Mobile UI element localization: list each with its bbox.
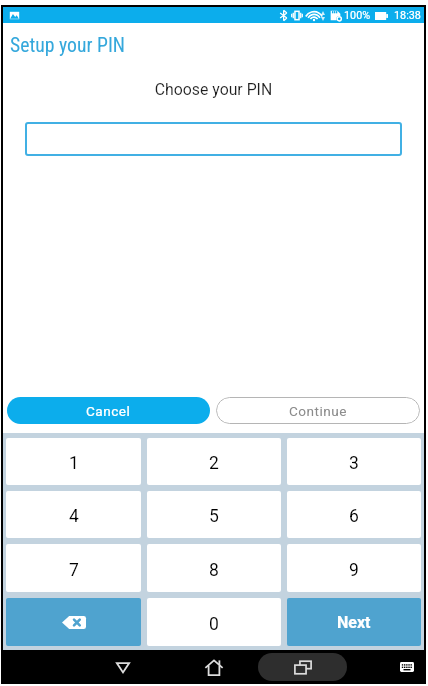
- staticText: 9: [349, 560, 359, 581]
- button[interactable]: 2: [147, 438, 281, 485]
- button[interactable]: 4: [6, 491, 141, 538]
- staticText: 5: [209, 506, 219, 527]
- staticText: 0: [209, 614, 219, 635]
- staticText: 6: [349, 506, 359, 527]
- button[interactable]: 3: [287, 438, 421, 485]
- staticText: 2: [209, 453, 219, 474]
- staticText: Cancel: [86, 403, 131, 419]
- staticText: 1: [69, 453, 79, 474]
- button[interactable]: 7: [6, 544, 141, 592]
- button[interactable]: Home: [184, 650, 244, 684]
- staticText: 4: [69, 506, 79, 527]
- staticText: Choose your PIN: [3, 80, 424, 99]
- button[interactable]: [25, 122, 402, 156]
- button[interactable]: Recents: [258, 653, 347, 681]
- staticText: 3: [349, 453, 359, 474]
- button[interactable]: Keyboard: [385, 650, 428, 684]
- button[interactable]: Next: [287, 598, 421, 646]
- staticText: 100%: [344, 9, 371, 22]
- staticText: Setup your PIN: [10, 34, 126, 57]
- staticText: Next: [337, 613, 371, 632]
- button[interactable]: Continue: [216, 397, 420, 424]
- button[interactable]: 5: [147, 491, 281, 538]
- button[interactable]: 0: [147, 598, 281, 646]
- button[interactable]: 6: [287, 491, 421, 538]
- button[interactable]: 1: [6, 438, 141, 485]
- button[interactable]: 9: [287, 544, 421, 592]
- button[interactable]: 8: [147, 544, 281, 592]
- button[interactable]: Back: [93, 650, 153, 684]
- button[interactable]: Delete: [6, 598, 141, 646]
- button[interactable]: Cancel: [7, 397, 210, 424]
- staticText: 7: [69, 560, 79, 581]
- staticText: 18:38: [394, 9, 421, 22]
- staticText: Continue: [289, 403, 348, 419]
- staticText: 8: [209, 560, 219, 581]
